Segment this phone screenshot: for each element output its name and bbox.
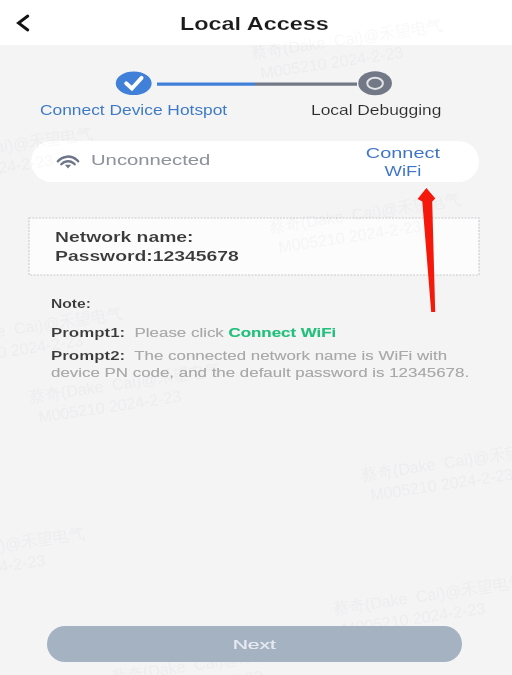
button[interactable]: Next	[47, 626, 462, 662]
staticText: 蔡奇(Dake Cai)@禾望电气	[0, 303, 125, 352]
staticText: Next	[233, 637, 276, 652]
staticText: Local Access	[180, 14, 329, 34]
staticText: 蔡奇(Dake Cai)@禾望电气	[0, 123, 95, 172]
staticText: Connect	[366, 145, 441, 161]
button[interactable]: Connect	[351, 141, 455, 182]
staticText: 蔡奇(Dake Cai)@禾望电气	[110, 639, 305, 675]
staticText: M005210 2024-2-23	[277, 217, 423, 257]
staticText: Prompt2: The connected network name is W…	[51, 348, 483, 380]
staticText: Password:12345678	[55, 248, 240, 264]
staticText: Local Debugging	[311, 102, 442, 118]
staticText: M005210 2024-2-23	[0, 331, 85, 371]
staticText: Prompt1: Please click Connect WiFi	[51, 325, 337, 340]
staticText: Unconnected	[91, 151, 211, 168]
staticText: 蔡奇(Dake Cai)@禾望电气	[268, 189, 463, 238]
button[interactable]: Back	[16, 14, 49, 47]
staticText: M005210 2024-2-23	[0, 151, 55, 191]
staticText: 蔡奇(Dake Cai)@禾望电气	[28, 359, 223, 408]
staticText: 蔡奇(Dake Cai)@禾望电气	[250, 15, 445, 64]
staticText: M005210 2024-2-23	[259, 43, 405, 83]
staticText: Note:	[51, 297, 91, 310]
staticText: WiFi	[384, 163, 421, 179]
staticText: M005210 2024-2-23	[341, 599, 487, 639]
staticText: Network name:	[55, 229, 194, 245]
staticText: Connect Device Hotspot	[40, 102, 227, 118]
